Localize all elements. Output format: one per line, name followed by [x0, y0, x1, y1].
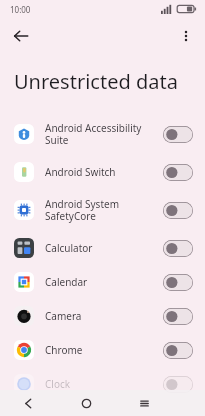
button[interactable]: Toggle — [163, 342, 193, 359]
button[interactable]: Calendar — [0, 265, 205, 299]
button[interactable]: Toggle — [163, 202, 193, 219]
button[interactable]: Back — [6, 21, 36, 51]
staticText: Camera — [45, 309, 155, 323]
button[interactable]: Home — [57, 390, 115, 416]
button[interactable]: Android Accessibility Suite — [0, 113, 205, 155]
staticText: Chrome — [45, 343, 155, 357]
button[interactable]: Calculator — [0, 231, 205, 265]
button[interactable]: Toggle — [163, 376, 193, 393]
staticText: Unrestricted data — [14, 68, 178, 95]
button[interactable]: Toggle — [163, 308, 193, 325]
staticText: Android Accessibility Suite — [45, 121, 155, 147]
button[interactable]: Camera — [0, 299, 205, 333]
button[interactable]: Clock — [0, 367, 205, 401]
button[interactable]: Android System SafetyCore — [0, 189, 205, 231]
button[interactable]: Chrome — [0, 333, 205, 367]
button[interactable]: Android Switch — [0, 155, 205, 189]
staticText: Calendar — [45, 275, 155, 289]
staticText: Clock — [45, 377, 163, 391]
button[interactable]: Toggle — [163, 274, 193, 291]
button[interactable]: Recent apps — [115, 390, 173, 416]
button[interactable]: More options — [172, 22, 200, 50]
button[interactable]: Toggle — [163, 240, 193, 257]
button[interactable]: Toggle — [163, 164, 193, 181]
button[interactable]: Back — [0, 390, 57, 416]
staticText: Android Switch — [45, 165, 155, 179]
staticText: 10:00 — [10, 4, 31, 15]
staticText: Android System SafetyCore — [45, 197, 155, 223]
button[interactable]: Toggle — [163, 126, 193, 143]
staticText: Calculator — [45, 241, 155, 255]
